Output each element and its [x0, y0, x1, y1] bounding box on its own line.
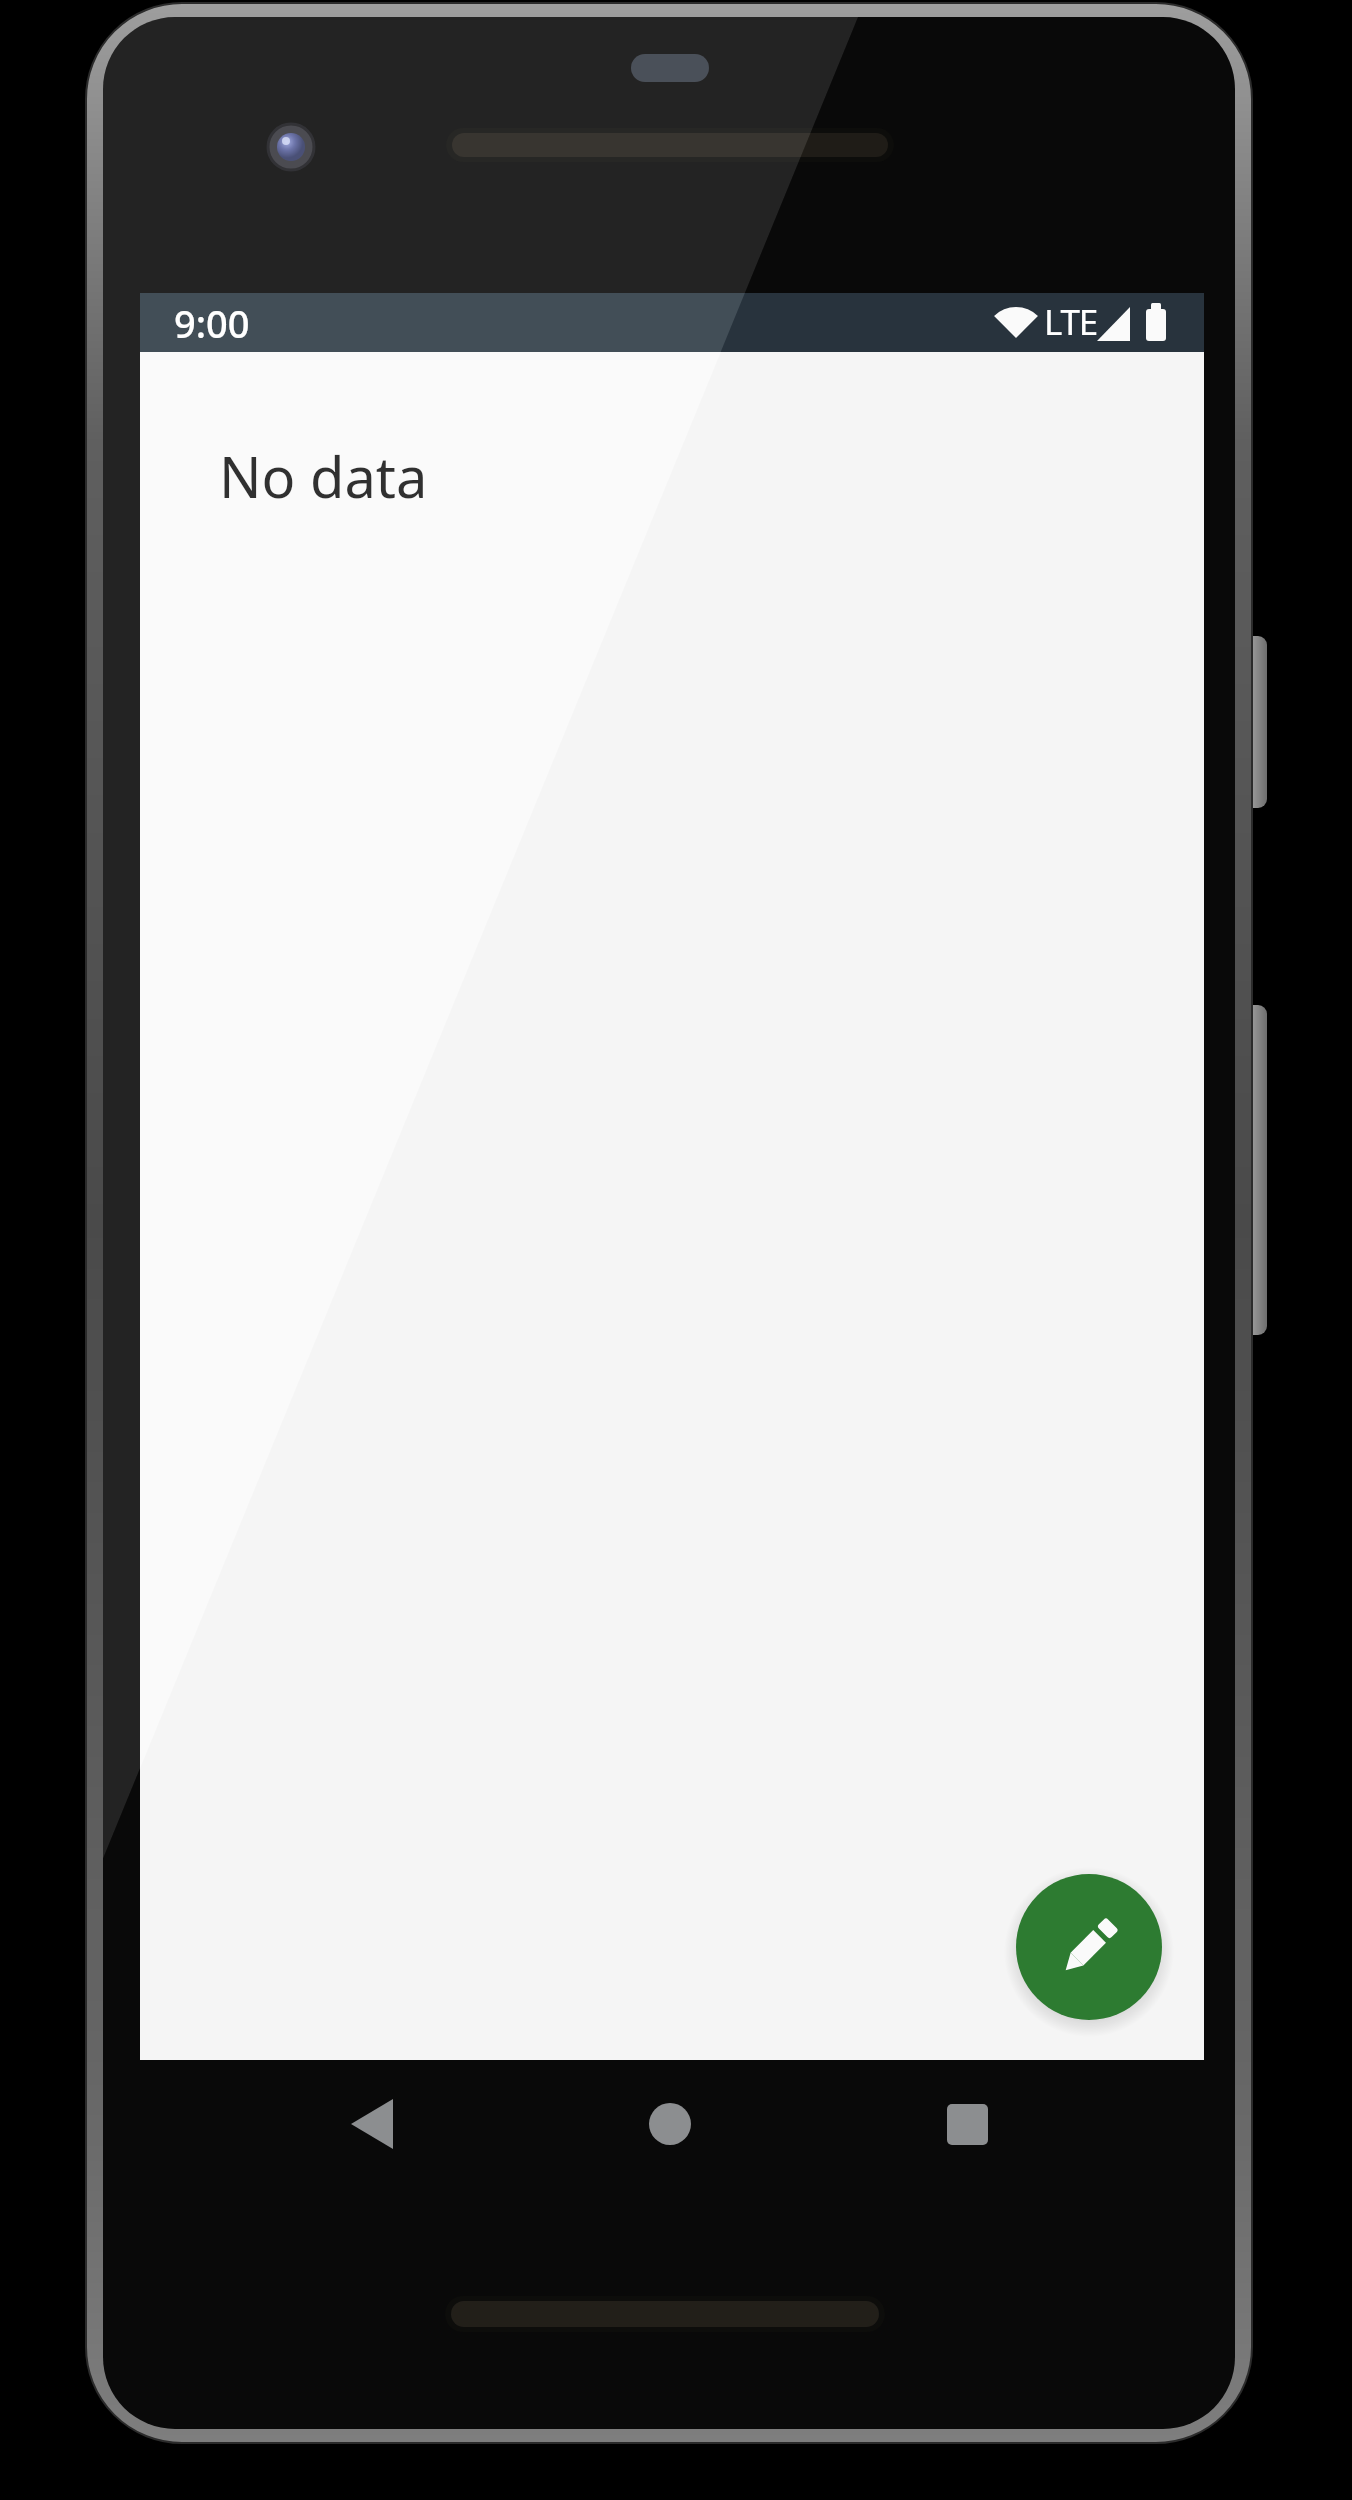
staticText: LTE: [1044, 298, 1097, 346]
button[interactable]: [634, 2088, 706, 2160]
staticText: No data: [219, 438, 428, 514]
button[interactable]: [337, 2088, 409, 2160]
staticText: 9:00: [174, 297, 250, 349]
button[interactable]: [1016, 1874, 1162, 2020]
button[interactable]: [931, 2088, 1003, 2160]
